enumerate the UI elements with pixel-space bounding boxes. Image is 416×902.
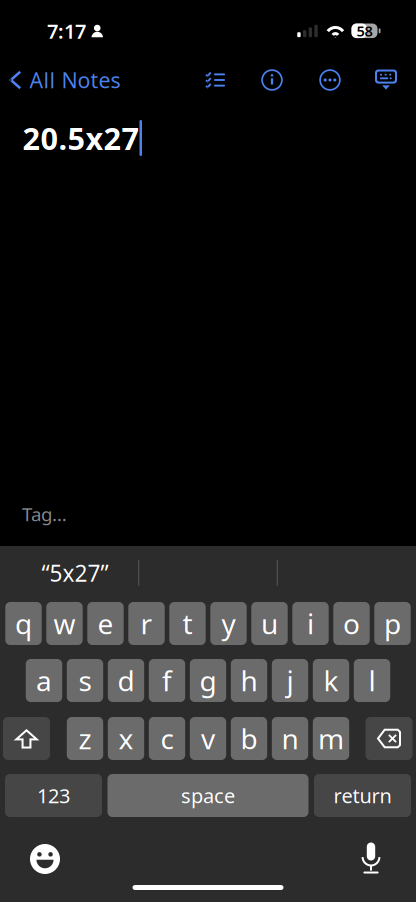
button[interactable]: d [108, 659, 144, 702]
staticText: 58 [356, 21, 372, 41]
button[interactable]: Info [250, 58, 294, 102]
staticText: b [240, 720, 257, 757]
button[interactable]: s [67, 659, 103, 702]
staticText: p [384, 605, 401, 642]
staticText: z [78, 720, 91, 757]
staticText: y [221, 605, 235, 642]
button[interactable]: z [67, 717, 103, 760]
button[interactable]: j [272, 659, 308, 702]
staticText: c [160, 720, 173, 757]
staticText: u [261, 605, 278, 642]
staticText: w [53, 605, 75, 642]
button[interactable]: x [108, 717, 144, 760]
staticText: Tag… [22, 502, 67, 526]
staticText: All Notes [29, 66, 120, 94]
staticText: 20.5x27 [22, 118, 139, 158]
staticText: f [162, 662, 172, 699]
button[interactable]: h [231, 659, 267, 702]
staticText: x [118, 720, 133, 757]
button[interactable]: r [128, 602, 165, 645]
staticText: k [323, 662, 338, 699]
staticText: q [15, 605, 32, 642]
button[interactable]: f [149, 659, 185, 702]
staticText: l [368, 662, 375, 699]
staticText: i [307, 605, 314, 642]
button[interactable]: n [272, 717, 308, 760]
button[interactable]: a [26, 659, 62, 702]
button[interactable]: o [333, 602, 370, 645]
staticText: 123 [37, 782, 70, 809]
staticText: n [281, 720, 298, 757]
button[interactable]: All Notes [0, 58, 140, 102]
staticText: s [78, 662, 91, 699]
button[interactable]: Shift [3, 717, 50, 760]
button[interactable]: return [314, 774, 411, 817]
button[interactable]: u [251, 602, 288, 645]
button[interactable]: v [190, 717, 226, 760]
button[interactable]: q [5, 602, 42, 645]
button[interactable]: More [308, 58, 352, 102]
button[interactable]: Delete [365, 717, 412, 760]
button[interactable]: space [107, 774, 308, 817]
button[interactable]: c [149, 717, 185, 760]
button[interactable]: t [169, 602, 206, 645]
staticText: e [97, 605, 113, 642]
staticText: a [36, 662, 52, 699]
staticText: 7:17 [47, 18, 86, 44]
button[interactable]: e [87, 602, 124, 645]
button[interactable]: l [354, 659, 390, 702]
staticText: j [286, 662, 293, 699]
button[interactable]: 123 [5, 774, 102, 817]
staticText: o [343, 605, 360, 642]
button[interactable]: i [292, 602, 329, 645]
staticText: g [199, 662, 216, 699]
staticText: d [117, 662, 134, 699]
button[interactable]: Dictate [348, 835, 394, 881]
button[interactable]: g [190, 659, 226, 702]
staticText: t [182, 605, 192, 642]
staticText: r [140, 605, 152, 642]
button[interactable]: p [374, 602, 411, 645]
button[interactable]: y [210, 602, 247, 645]
staticText: v [201, 720, 215, 757]
button[interactable]: m [313, 717, 349, 760]
staticText: m [318, 720, 344, 757]
button[interactable]: w [46, 602, 83, 645]
staticText: return [333, 782, 391, 809]
button[interactable]: Emoji [22, 836, 68, 882]
button[interactable]: Checklist [193, 58, 237, 102]
button[interactable]: b [231, 717, 267, 760]
staticText: “5x27” [41, 558, 108, 588]
staticText: space [181, 782, 235, 809]
button[interactable]: Hide Keyboard [364, 58, 408, 102]
button[interactable]: k [313, 659, 349, 702]
staticText: h [240, 662, 257, 699]
